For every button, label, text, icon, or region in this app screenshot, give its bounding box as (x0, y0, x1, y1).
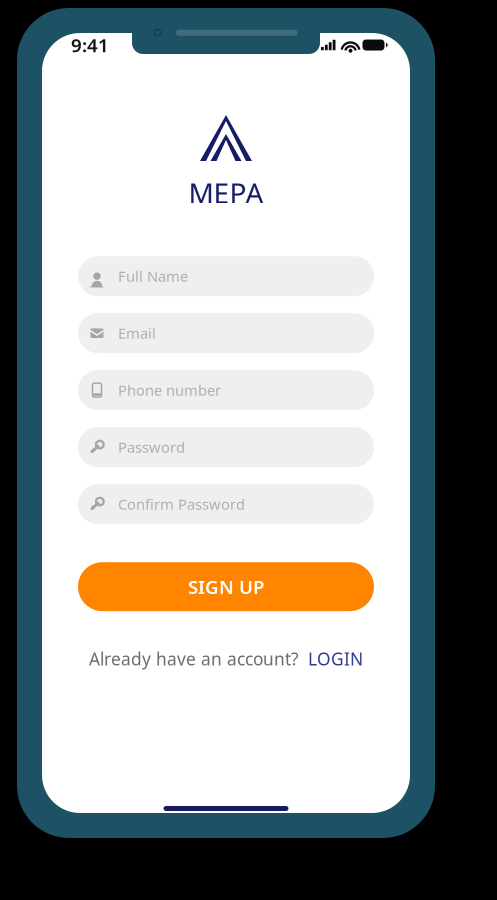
staticText: Password (118, 437, 185, 457)
staticText: LOGIN (308, 647, 363, 670)
staticText: Full Name (118, 266, 188, 286)
button[interactable]: Phone number (78, 370, 374, 410)
staticText: Email (118, 323, 156, 343)
staticText: 9:41 (71, 33, 109, 57)
staticText: Confirm Password (118, 494, 245, 514)
button[interactable]: Confirm Password (78, 484, 374, 524)
staticText: Phone number (118, 380, 221, 400)
button[interactable]: Password (78, 427, 374, 467)
staticText: SIGN UP (188, 574, 264, 599)
button[interactable]: Email (78, 313, 374, 353)
staticText: MEPA (188, 174, 263, 211)
button[interactable]: SIGN UP (78, 562, 374, 611)
button[interactable]: LOGIN (308, 647, 363, 670)
staticText: Already have an account? (89, 647, 299, 670)
button[interactable]: Full Name (78, 256, 374, 296)
